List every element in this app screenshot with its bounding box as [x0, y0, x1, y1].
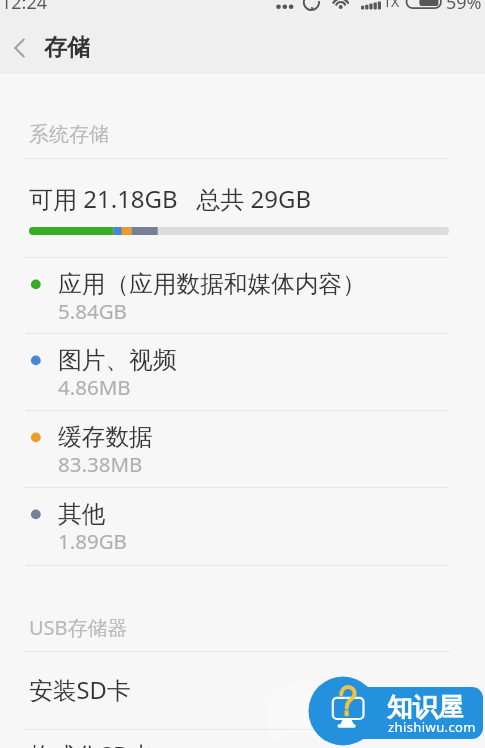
staticText: 知识屋 [387, 691, 464, 723]
staticText: 缓存数据 [58, 422, 153, 452]
button[interactable]: 缓存数据 [0, 411, 485, 487]
staticText: 59% [446, 0, 482, 12]
staticText: 4.86MB [58, 373, 131, 401]
staticText: 图片、视频 [58, 345, 177, 375]
button[interactable]: 安装SD卡 [0, 652, 485, 729]
staticText: 5.84GB [58, 297, 127, 325]
staticText: 可用 21.18GB 总共 29GB [29, 182, 312, 215]
button[interactable]: 格式化SD卡 [0, 730, 485, 748]
staticText: 系统存储 [29, 122, 109, 147]
staticText: USB存储器 [29, 614, 128, 641]
staticText: 其他 [58, 499, 106, 529]
staticText: 1.89GB [58, 527, 127, 555]
staticText: 格式化SD卡 [29, 739, 155, 748]
button[interactable]: 图片、视频 [0, 334, 485, 410]
button[interactable]: 其他 [0, 488, 485, 565]
staticText: 存储 [44, 33, 90, 62]
staticText: 12:24 [1, 0, 48, 12]
staticText: 安装SD卡 [29, 674, 131, 706]
staticText: 83.38MB [58, 450, 143, 478]
button[interactable]: 应用（应用数据和媒体内容） [0, 258, 485, 333]
button[interactable]: Back [0, 26, 44, 70]
staticText: zhishiwu.com [388, 718, 476, 736]
staticText: 1X [383, 0, 400, 11]
staticText: 应用（应用数据和媒体内容） [58, 269, 366, 299]
